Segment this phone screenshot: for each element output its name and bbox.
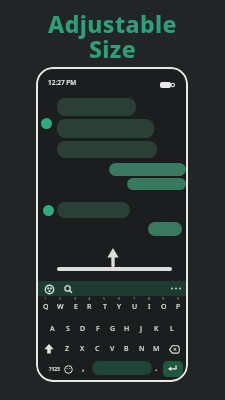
staticText: ?123 [49, 366, 60, 373]
button[interactable]: T [97, 301, 112, 313]
button[interactable]: 6 [112, 296, 127, 301]
staticText: F [96, 324, 100, 334]
staticText: 12:27 PM [48, 78, 77, 87]
staticText: 7 [133, 296, 136, 301]
button[interactable]: A [45, 323, 60, 335]
staticText: H [124, 324, 130, 334]
button[interactable]: F [90, 323, 105, 335]
button[interactable]: Q [38, 301, 53, 313]
button[interactable]: R [82, 301, 97, 313]
button[interactable]: J [134, 323, 149, 335]
button[interactable]: E [68, 301, 83, 313]
staticText: M [153, 344, 160, 354]
staticText: O [161, 302, 167, 312]
staticText: E [74, 302, 78, 312]
button[interactable]: D [75, 323, 90, 335]
staticText: X [80, 344, 85, 354]
staticText: 3 [74, 296, 77, 301]
staticText: A [50, 324, 55, 334]
button[interactable] [109, 163, 186, 176]
button[interactable]: H [119, 323, 134, 335]
staticText: C [95, 344, 100, 354]
button[interactable] [64, 365, 73, 374]
staticText: K [154, 324, 159, 334]
staticText: I [148, 302, 151, 312]
button[interactable]: 5 [97, 296, 112, 301]
button[interactable]: Y [112, 301, 127, 313]
button[interactable]: B [119, 343, 134, 355]
button[interactable]: P [171, 301, 186, 313]
button[interactable]: 4 [82, 296, 97, 301]
button[interactable] [92, 361, 152, 375]
button[interactable]: 8 [142, 296, 157, 301]
staticText: Y [117, 302, 122, 312]
button[interactable] [169, 345, 180, 354]
button[interactable]: W [53, 301, 68, 313]
button[interactable]: Z [60, 343, 75, 355]
button[interactable] [57, 119, 154, 138]
button[interactable] [57, 98, 136, 116]
button[interactable] [57, 202, 130, 218]
button[interactable]: 1 [38, 296, 53, 301]
button[interactable]: . [150, 359, 162, 375]
staticText: D [80, 324, 86, 334]
button[interactable] [170, 287, 182, 290]
button[interactable]: 7 [127, 296, 142, 301]
staticText: Adjustable Size [0, 8, 225, 64]
staticText: , [82, 361, 85, 373]
staticText: S [66, 324, 70, 334]
button[interactable] [148, 222, 182, 236]
staticText: U [132, 302, 138, 312]
button[interactable]: , [77, 359, 89, 375]
staticText: 5 [103, 296, 106, 301]
button[interactable]: K [149, 323, 164, 335]
button[interactable]: V [105, 343, 120, 355]
staticText: 9 [162, 296, 165, 301]
staticText: 2 [59, 296, 62, 301]
staticText: T [103, 302, 107, 312]
button[interactable]: 9 [156, 296, 171, 301]
button[interactable]: 3 [68, 296, 83, 301]
button[interactable] [45, 285, 54, 294]
staticText: B [124, 344, 129, 354]
button[interactable]: S [60, 323, 75, 335]
staticText: Z [65, 344, 70, 354]
staticText: J [140, 324, 143, 334]
staticText: 1 [44, 296, 47, 301]
staticText: . [155, 361, 158, 373]
staticText: 8 [148, 296, 151, 301]
button[interactable]: C [90, 343, 105, 355]
staticText: P [176, 302, 181, 312]
button[interactable]: 2 [53, 296, 68, 301]
staticText: G [110, 324, 116, 334]
staticText: 4 [88, 296, 91, 301]
staticText: Q [43, 302, 49, 312]
button[interactable] [38, 281, 186, 296]
button[interactable]: M [149, 343, 164, 355]
button[interactable]: U [127, 301, 142, 313]
button[interactable]: X [75, 343, 90, 355]
staticText: N [139, 344, 145, 354]
staticText: V [110, 344, 115, 354]
staticText: 6 [118, 296, 121, 301]
button[interactable]: G [105, 323, 120, 335]
button[interactable] [44, 344, 54, 354]
button[interactable]: ?123 [45, 363, 63, 375]
staticText: L [170, 324, 174, 334]
button[interactable] [163, 361, 183, 377]
button[interactable]: I [142, 301, 157, 313]
staticText: R [87, 302, 92, 312]
staticText: W [57, 302, 64, 312]
button[interactable]: N [134, 343, 149, 355]
button[interactable] [64, 285, 73, 294]
button[interactable] [57, 141, 157, 158]
button[interactable]: 0 [171, 296, 186, 301]
button[interactable]: O [156, 301, 171, 313]
button[interactable] [127, 178, 186, 190]
staticText: 0 [177, 296, 180, 301]
button[interactable]: L [164, 323, 179, 335]
